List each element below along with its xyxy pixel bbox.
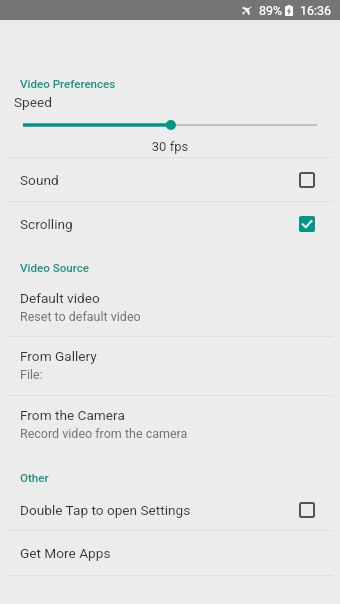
button[interactable]: Default video <box>0 282 340 336</box>
button[interactable]: Sound <box>0 158 340 201</box>
staticText: 89% <box>259 3 283 18</box>
staticText: Get More Apps <box>20 545 111 561</box>
staticText: Sound <box>20 172 299 188</box>
staticText: Video Source <box>20 261 89 275</box>
staticText: 30 fps <box>0 139 340 154</box>
button[interactable]: Speed <box>0 90 340 157</box>
staticText: Scrolling <box>20 216 299 232</box>
other: Airplane mode <box>242 5 253 15</box>
staticText: Reset to default video <box>20 309 141 324</box>
staticText: Speed <box>14 94 52 110</box>
staticText: File: <box>20 367 43 382</box>
button[interactable]: Get More Apps <box>0 531 340 575</box>
staticText: 16:36 <box>300 3 332 18</box>
button[interactable]: Double Tap to open Settings <box>0 490 340 530</box>
staticText: Default video <box>20 290 100 306</box>
staticText: Record video from the camera <box>20 426 188 441</box>
button[interactable]: From Gallery <box>0 337 340 395</box>
staticText: Double Tap to open Settings <box>20 502 299 518</box>
staticText: From Gallery <box>20 348 97 364</box>
staticText: From the Camera <box>20 407 125 423</box>
staticText: Video Preferences <box>20 77 116 91</box>
button[interactable]: From the Camera <box>0 396 340 454</box>
button[interactable]: Scrolling <box>0 202 340 245</box>
staticText: Other <box>20 471 49 485</box>
